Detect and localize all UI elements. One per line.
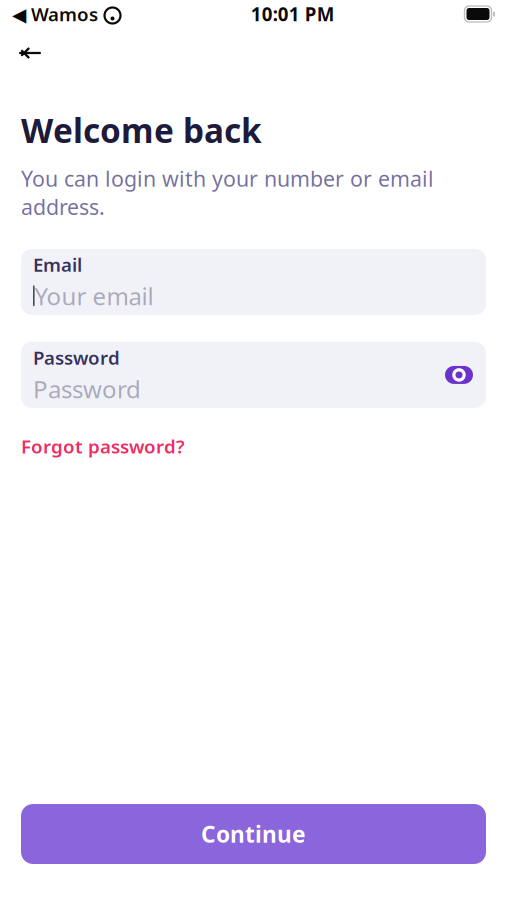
button[interactable]: Back xyxy=(6,29,54,77)
staticText: ◀ Wamos xyxy=(12,2,98,26)
staticText: Welcome back xyxy=(21,108,262,152)
button[interactable]: Forgot password? xyxy=(21,428,185,465)
staticText: Password xyxy=(33,373,141,405)
staticText: You can login with your number or email … xyxy=(21,164,434,221)
staticText: Forgot password? xyxy=(21,434,185,459)
staticText: Continue xyxy=(201,819,306,849)
staticText: Email xyxy=(33,252,82,277)
button[interactable]: Show password xyxy=(438,354,480,396)
staticText: Your email xyxy=(35,280,154,312)
button[interactable]: Continue xyxy=(21,804,486,864)
staticText: 10:01 PM xyxy=(251,2,335,26)
staticText: Password xyxy=(33,345,120,370)
